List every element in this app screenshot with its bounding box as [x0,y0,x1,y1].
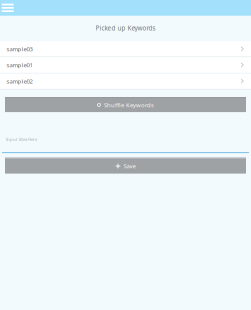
staticText: Save [123,162,135,170]
button[interactable]: sample03 [0,41,251,57]
button[interactable]: Shuffle Keywords [5,97,246,112]
staticText: sample01 [6,61,32,69]
staticText: sample02 [6,77,32,85]
button[interactable]: sample01 [0,57,251,74]
staticText: Shuffle Keywords [104,101,154,109]
button[interactable]: Save [5,158,246,174]
button[interactable]: sample02 [0,74,251,90]
staticText: sample03 [6,45,32,53]
button[interactable]: Menu [1,0,14,16]
staticText: Input Idea Here [6,136,37,142]
staticText: Picked up Keywords [95,24,155,32]
